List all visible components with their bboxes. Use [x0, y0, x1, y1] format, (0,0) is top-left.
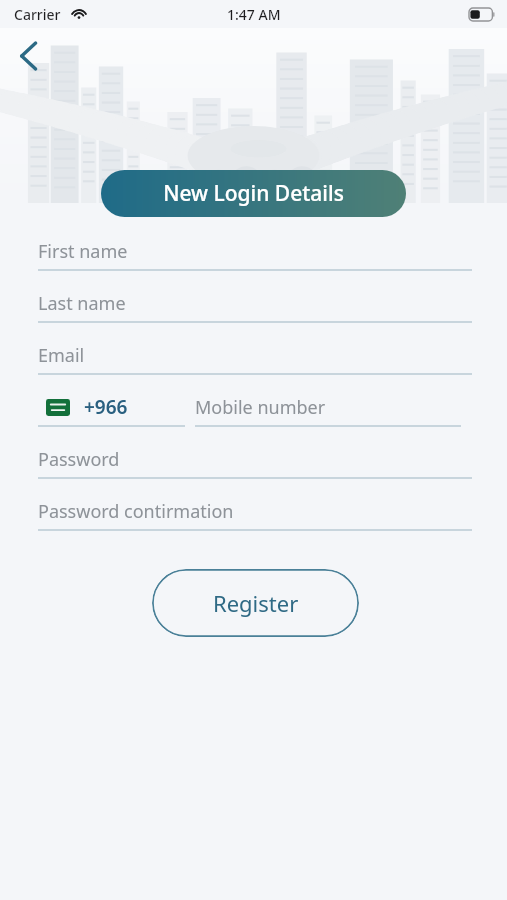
button[interactable]: Password — [38, 441, 472, 477]
staticText: New Login Details — [163, 179, 344, 208]
button[interactable]: Password contirmation — [38, 493, 472, 529]
button[interactable]: New Login Details — [101, 170, 406, 217]
staticText: Password — [38, 447, 120, 472]
button[interactable]: First name — [38, 233, 472, 269]
button[interactable]: Email — [38, 337, 472, 373]
staticText: Email — [38, 343, 85, 368]
button[interactable]: Last name — [38, 285, 472, 321]
staticText: Carrier — [14, 5, 61, 24]
staticText: Password contirmation — [38, 499, 234, 524]
button[interactable]: Register — [152, 569, 359, 637]
staticText: Mobile number — [195, 395, 326, 420]
staticText: Register — [213, 588, 299, 618]
button[interactable]: Back — [6, 34, 50, 78]
staticText: First name — [38, 239, 128, 264]
staticText: 1:47 AM — [227, 5, 281, 24]
button[interactable]: +966 — [38, 389, 185, 425]
staticText: Last name — [38, 291, 126, 316]
staticText: +966 — [84, 394, 128, 420]
button[interactable]: Mobile number — [195, 389, 472, 425]
